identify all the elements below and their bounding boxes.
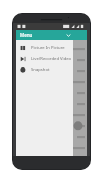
button[interactable]: Menu [16,30,73,40]
staticText: Menu [20,32,33,38]
staticText: Snapshot [31,67,50,73]
button[interactable]: Snapshot [16,64,73,75]
button[interactable]: Expand [63,30,73,40]
button[interactable]: Picture In Picture [16,42,73,53]
button[interactable]: Live/Recorded Video [16,53,73,64]
staticText: Picture In Picture [31,45,65,51]
staticText: Live/Recorded Video [31,56,72,62]
